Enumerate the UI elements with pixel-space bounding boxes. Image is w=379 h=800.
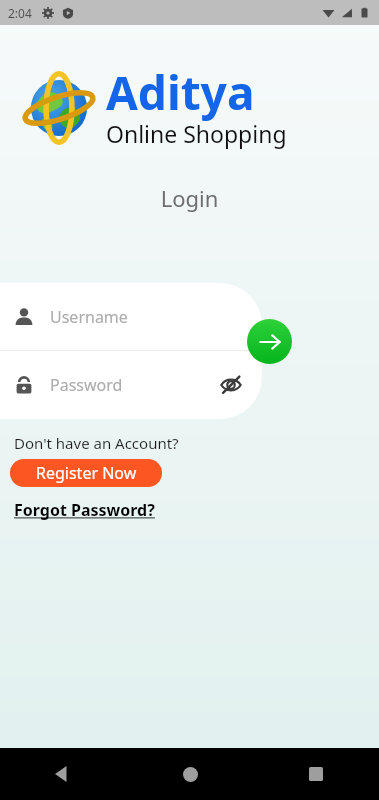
button[interactable]: Show password: [218, 372, 244, 398]
button[interactable]: Recents: [296, 754, 336, 794]
staticText: Login: [0, 183, 379, 213]
button[interactable]: Sign in: [247, 319, 292, 364]
staticText: Aditya: [106, 61, 255, 124]
staticText: Online Shopping: [106, 118, 287, 149]
staticText: Forgot Password?: [14, 499, 155, 521]
staticText: 2:04: [8, 5, 32, 21]
staticText: Don't have an Account?: [14, 433, 179, 453]
button[interactable]: Username: [0, 283, 262, 350]
button[interactable]: Home: [170, 754, 210, 794]
staticText: Password: [50, 374, 123, 396]
staticText: Username: [50, 306, 128, 328]
button[interactable]: Password: [0, 351, 262, 419]
button[interactable]: Forgot Password?: [14, 497, 155, 523]
button[interactable]: Register Now: [10, 459, 162, 487]
button[interactable]: Back: [43, 754, 83, 794]
staticText: Register Now: [36, 462, 137, 484]
